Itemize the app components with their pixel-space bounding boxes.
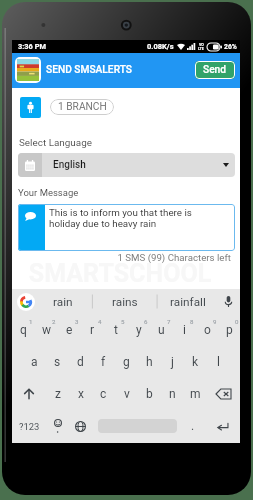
staticText: c [100,387,107,401]
staticText: 8 [190,318,194,325]
staticText: 4 [98,318,102,325]
staticText: ?123 [19,421,40,432]
button[interactable]: Backspace [207,378,240,410]
button[interactable]: n [161,378,184,410]
staticText: Select Language [19,137,92,149]
staticText: j [171,355,174,369]
button[interactable]: q [12,314,35,346]
button[interactable]: c [92,378,115,410]
staticText: x [78,387,84,401]
button[interactable]: Voice input [219,289,237,314]
button[interactable]: d [69,346,92,378]
staticText: English [53,159,86,171]
staticText: g [123,355,130,369]
button[interactable]: This is to inform you that there is holi… [18,204,235,251]
button[interactable]: t [104,314,127,346]
button[interactable]: . [181,410,204,442]
button[interactable]: r [81,314,104,346]
staticText: v [124,387,130,401]
staticText: 0.08K/s [147,42,174,51]
button[interactable]: o [196,314,219,346]
button[interactable]: y [127,314,150,346]
button[interactable]: rainfall [160,289,216,314]
staticText: 6 [144,318,148,325]
staticText: f [101,355,106,369]
button[interactable]: ?123 [12,410,47,442]
staticText: Send [203,64,227,76]
button[interactable]: a [23,346,46,378]
staticText: 1 SMS (99) Characters left [12,252,231,263]
button[interactable]: j [161,346,184,378]
button[interactable]: rain [35,289,91,314]
staticText: 1 [29,318,33,325]
staticText: l [217,355,220,369]
staticText: 3 [75,318,79,325]
staticText: d [77,355,84,369]
button[interactable]: s [46,346,69,378]
button[interactable]: i [173,314,196,346]
button[interactable]: u [150,314,173,346]
staticText: 2 [52,318,56,325]
staticText: SMARTSCHOOL ERP [6,259,234,317]
button[interactable]: f [92,346,115,378]
staticText: o [204,323,211,337]
staticText: 5 [121,318,125,325]
staticText: rainfall [170,295,206,309]
button[interactable]: Send [195,61,235,79]
button[interactable]: z [46,378,69,410]
button[interactable]: k [184,346,207,378]
staticText: w [42,323,52,337]
button[interactable]: Enter [204,410,240,442]
staticText: VO [199,43,204,47]
button[interactable]: English [18,153,235,177]
button[interactable]: Switch language [69,410,91,442]
staticText: LTE [198,47,204,51]
button[interactable]: v [115,378,138,410]
button[interactable]: w [35,314,58,346]
staticText: h [146,355,153,369]
staticText: t [114,323,118,337]
staticText: 1 BRANCH [58,101,107,113]
button[interactable]: h [138,346,161,378]
staticText: q [20,323,27,337]
button[interactable]: l [207,346,230,378]
staticText: rain [53,295,73,309]
staticText: b [146,387,153,401]
staticText: a [31,355,38,369]
button[interactable]: Select recipients [20,97,41,118]
staticText: i [183,323,186,337]
button[interactable]: m [184,378,207,410]
button[interactable]: p [219,314,240,346]
staticText: n [169,387,176,401]
button[interactable]: e [58,314,81,346]
staticText: 0 [235,318,239,325]
button[interactable]: rains [97,289,153,314]
staticText: y [136,323,142,337]
button[interactable]: Google search [17,293,35,311]
staticText: 9 [213,318,217,325]
button[interactable]: g [115,346,138,378]
staticText: s [54,355,61,369]
button[interactable]: b [138,378,161,410]
staticText: . [191,419,195,433]
staticText: e [66,323,73,337]
staticText: This is to inform you that there is holi… [49,207,201,229]
button[interactable]: App logo [17,59,39,81]
staticText: 26% [224,43,237,51]
staticText: rains [112,295,138,309]
button[interactable]: Shift [12,378,46,410]
staticText: Your Message [18,187,79,198]
staticText: r [90,323,95,337]
staticText: SEND SMSALERTS [46,64,133,76]
button[interactable]: Emoji and comma [46,410,69,442]
staticText: m [190,387,201,401]
staticText: z [55,387,61,401]
button[interactable]: 1 BRANCH [50,99,114,115]
button[interactable]: x [69,378,92,410]
staticText: 7 [167,318,171,325]
staticText: p [226,323,233,337]
staticText: k [192,355,199,369]
staticText: u [158,323,165,337]
staticText: 3:36 PM [18,42,46,51]
